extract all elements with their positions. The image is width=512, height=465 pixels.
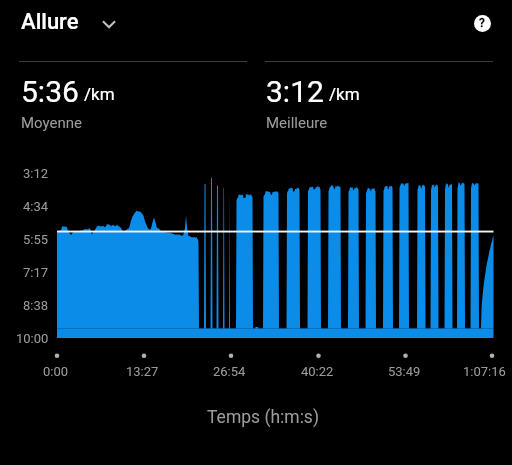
staticText: 3:12	[23, 166, 49, 181]
staticText: 53:49	[388, 364, 421, 379]
staticText: 40:22	[301, 364, 334, 379]
staticText: 13:27	[126, 364, 159, 379]
staticText: 7:17	[23, 265, 49, 280]
staticText: /km	[329, 84, 360, 104]
button[interactable]: Help	[466, 7, 498, 39]
button[interactable]: Allure	[13, 4, 125, 42]
staticText: 0:00	[43, 364, 69, 379]
staticText: 10:00	[16, 331, 49, 346]
staticText: 1:07:16	[463, 364, 506, 379]
staticText: Temps (h:m:s)	[207, 407, 319, 428]
staticText: 5:55	[23, 232, 49, 247]
staticText: Meilleure	[266, 114, 328, 132]
staticText: Allure	[21, 9, 79, 35]
staticText: 26:54	[213, 364, 246, 379]
staticText: /km	[84, 84, 115, 104]
staticText: 8:38	[23, 298, 49, 313]
staticText: 4:34	[23, 199, 49, 214]
staticText: 3:12	[266, 74, 324, 109]
staticText: Moyenne	[21, 114, 83, 132]
staticText: ?	[479, 16, 485, 30]
staticText: 5:36	[21, 74, 79, 109]
